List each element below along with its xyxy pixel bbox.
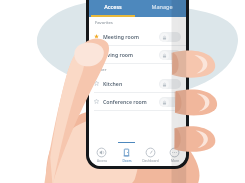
staticText: Access [97, 159, 107, 163]
button[interactable]: Access [89, 3, 137, 17]
button[interactable]: Unlock door [159, 97, 181, 107]
staticText: Favorites [95, 20, 113, 26]
staticText: Conference room [103, 98, 147, 105]
button[interactable]: Kitchen [89, 75, 186, 92]
staticText: Living room [103, 51, 134, 58]
button[interactable]: Meeting room [89, 28, 186, 45]
staticText: Kitchen [103, 80, 123, 87]
button[interactable]: Unlock door [159, 32, 181, 42]
button[interactable]: Dashboard [138, 142, 162, 166]
staticText: More [171, 159, 179, 163]
staticText: Other [95, 67, 107, 73]
staticText: Meeting room [103, 33, 139, 40]
button[interactable]: Manage [137, 3, 186, 17]
button[interactable]: Conference room [89, 93, 186, 110]
button[interactable]: Unlock door [159, 79, 181, 89]
staticText: Access [104, 3, 122, 10]
staticText: Manage [151, 3, 173, 10]
button[interactable]: Living room [89, 46, 186, 63]
button[interactable]: Unlock door [159, 50, 181, 60]
button[interactable]: Doors [114, 142, 138, 166]
button[interactable]: Access [89, 142, 114, 166]
staticText: Doors [122, 159, 132, 163]
staticText: Dashboard [142, 159, 159, 163]
button[interactable]: More [162, 142, 186, 166]
